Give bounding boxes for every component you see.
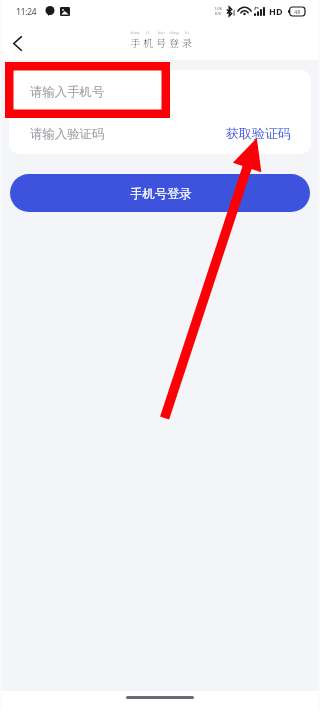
staticText: K/S bbox=[215, 11, 222, 16]
staticText: 手 bbox=[130, 35, 140, 49]
staticText: hào bbox=[157, 29, 165, 35]
staticText: HD bbox=[269, 5, 283, 17]
staticText: 1.06 bbox=[214, 6, 222, 11]
staticText: 获取验证码 bbox=[226, 125, 291, 141]
staticText: shǒu bbox=[130, 29, 140, 35]
staticText: 手机号登录 bbox=[130, 186, 192, 202]
staticText: 机 bbox=[143, 35, 153, 49]
button[interactable]: Back bbox=[0, 22, 38, 60]
staticText: dēng bbox=[169, 29, 179, 35]
staticText: 登 bbox=[169, 35, 179, 49]
button[interactable]: 获取验证码 bbox=[226, 125, 291, 141]
staticText: 11:24 bbox=[16, 5, 37, 17]
staticText: lù bbox=[185, 29, 189, 35]
staticText: 48 bbox=[294, 8, 301, 15]
staticText: 号 bbox=[156, 35, 166, 49]
staticText: 请输入手机号 bbox=[30, 84, 105, 100]
button[interactable]: 请输入手机号 bbox=[9, 70, 311, 112]
staticText: 请输入验证码 bbox=[30, 126, 105, 142]
button[interactable]: 手机号登录 bbox=[10, 174, 310, 212]
staticText: 录 bbox=[182, 35, 192, 49]
staticText: jī bbox=[146, 29, 149, 35]
